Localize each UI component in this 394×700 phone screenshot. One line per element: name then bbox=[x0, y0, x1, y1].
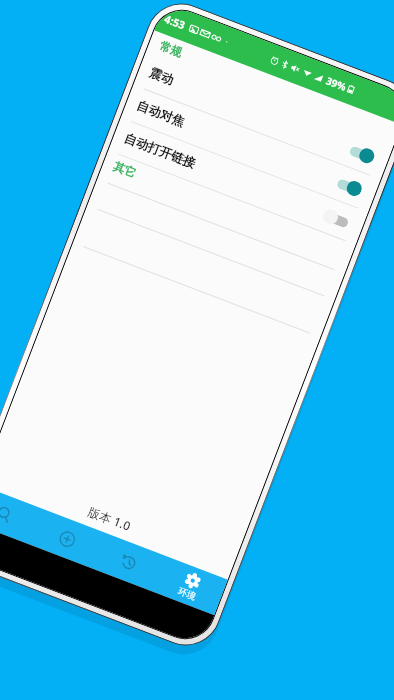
button[interactable]: 震动 bbox=[133, 53, 393, 179]
staticText: 39% bbox=[324, 73, 349, 94]
staticText: 自动打开链接 bbox=[122, 130, 198, 172]
button[interactable]: Add bbox=[29, 509, 105, 568]
staticText: 4:53 bbox=[162, 12, 187, 32]
button[interactable]: Search bbox=[0, 485, 43, 544]
staticText: 震动 bbox=[147, 65, 176, 89]
button[interactable]: 环境 bbox=[153, 556, 228, 615]
staticText: 自动对焦 bbox=[134, 98, 187, 130]
staticText: 环境 bbox=[177, 585, 198, 602]
button[interactable]: 自动打开链接 bbox=[108, 118, 368, 244]
staticText: 其它 bbox=[112, 159, 138, 180]
staticText: 版本 1.0 bbox=[0, 464, 236, 573]
button[interactable]: History bbox=[91, 532, 166, 591]
button[interactable]: 自动对焦 bbox=[121, 85, 381, 212]
staticText: 常规 bbox=[158, 39, 184, 60]
